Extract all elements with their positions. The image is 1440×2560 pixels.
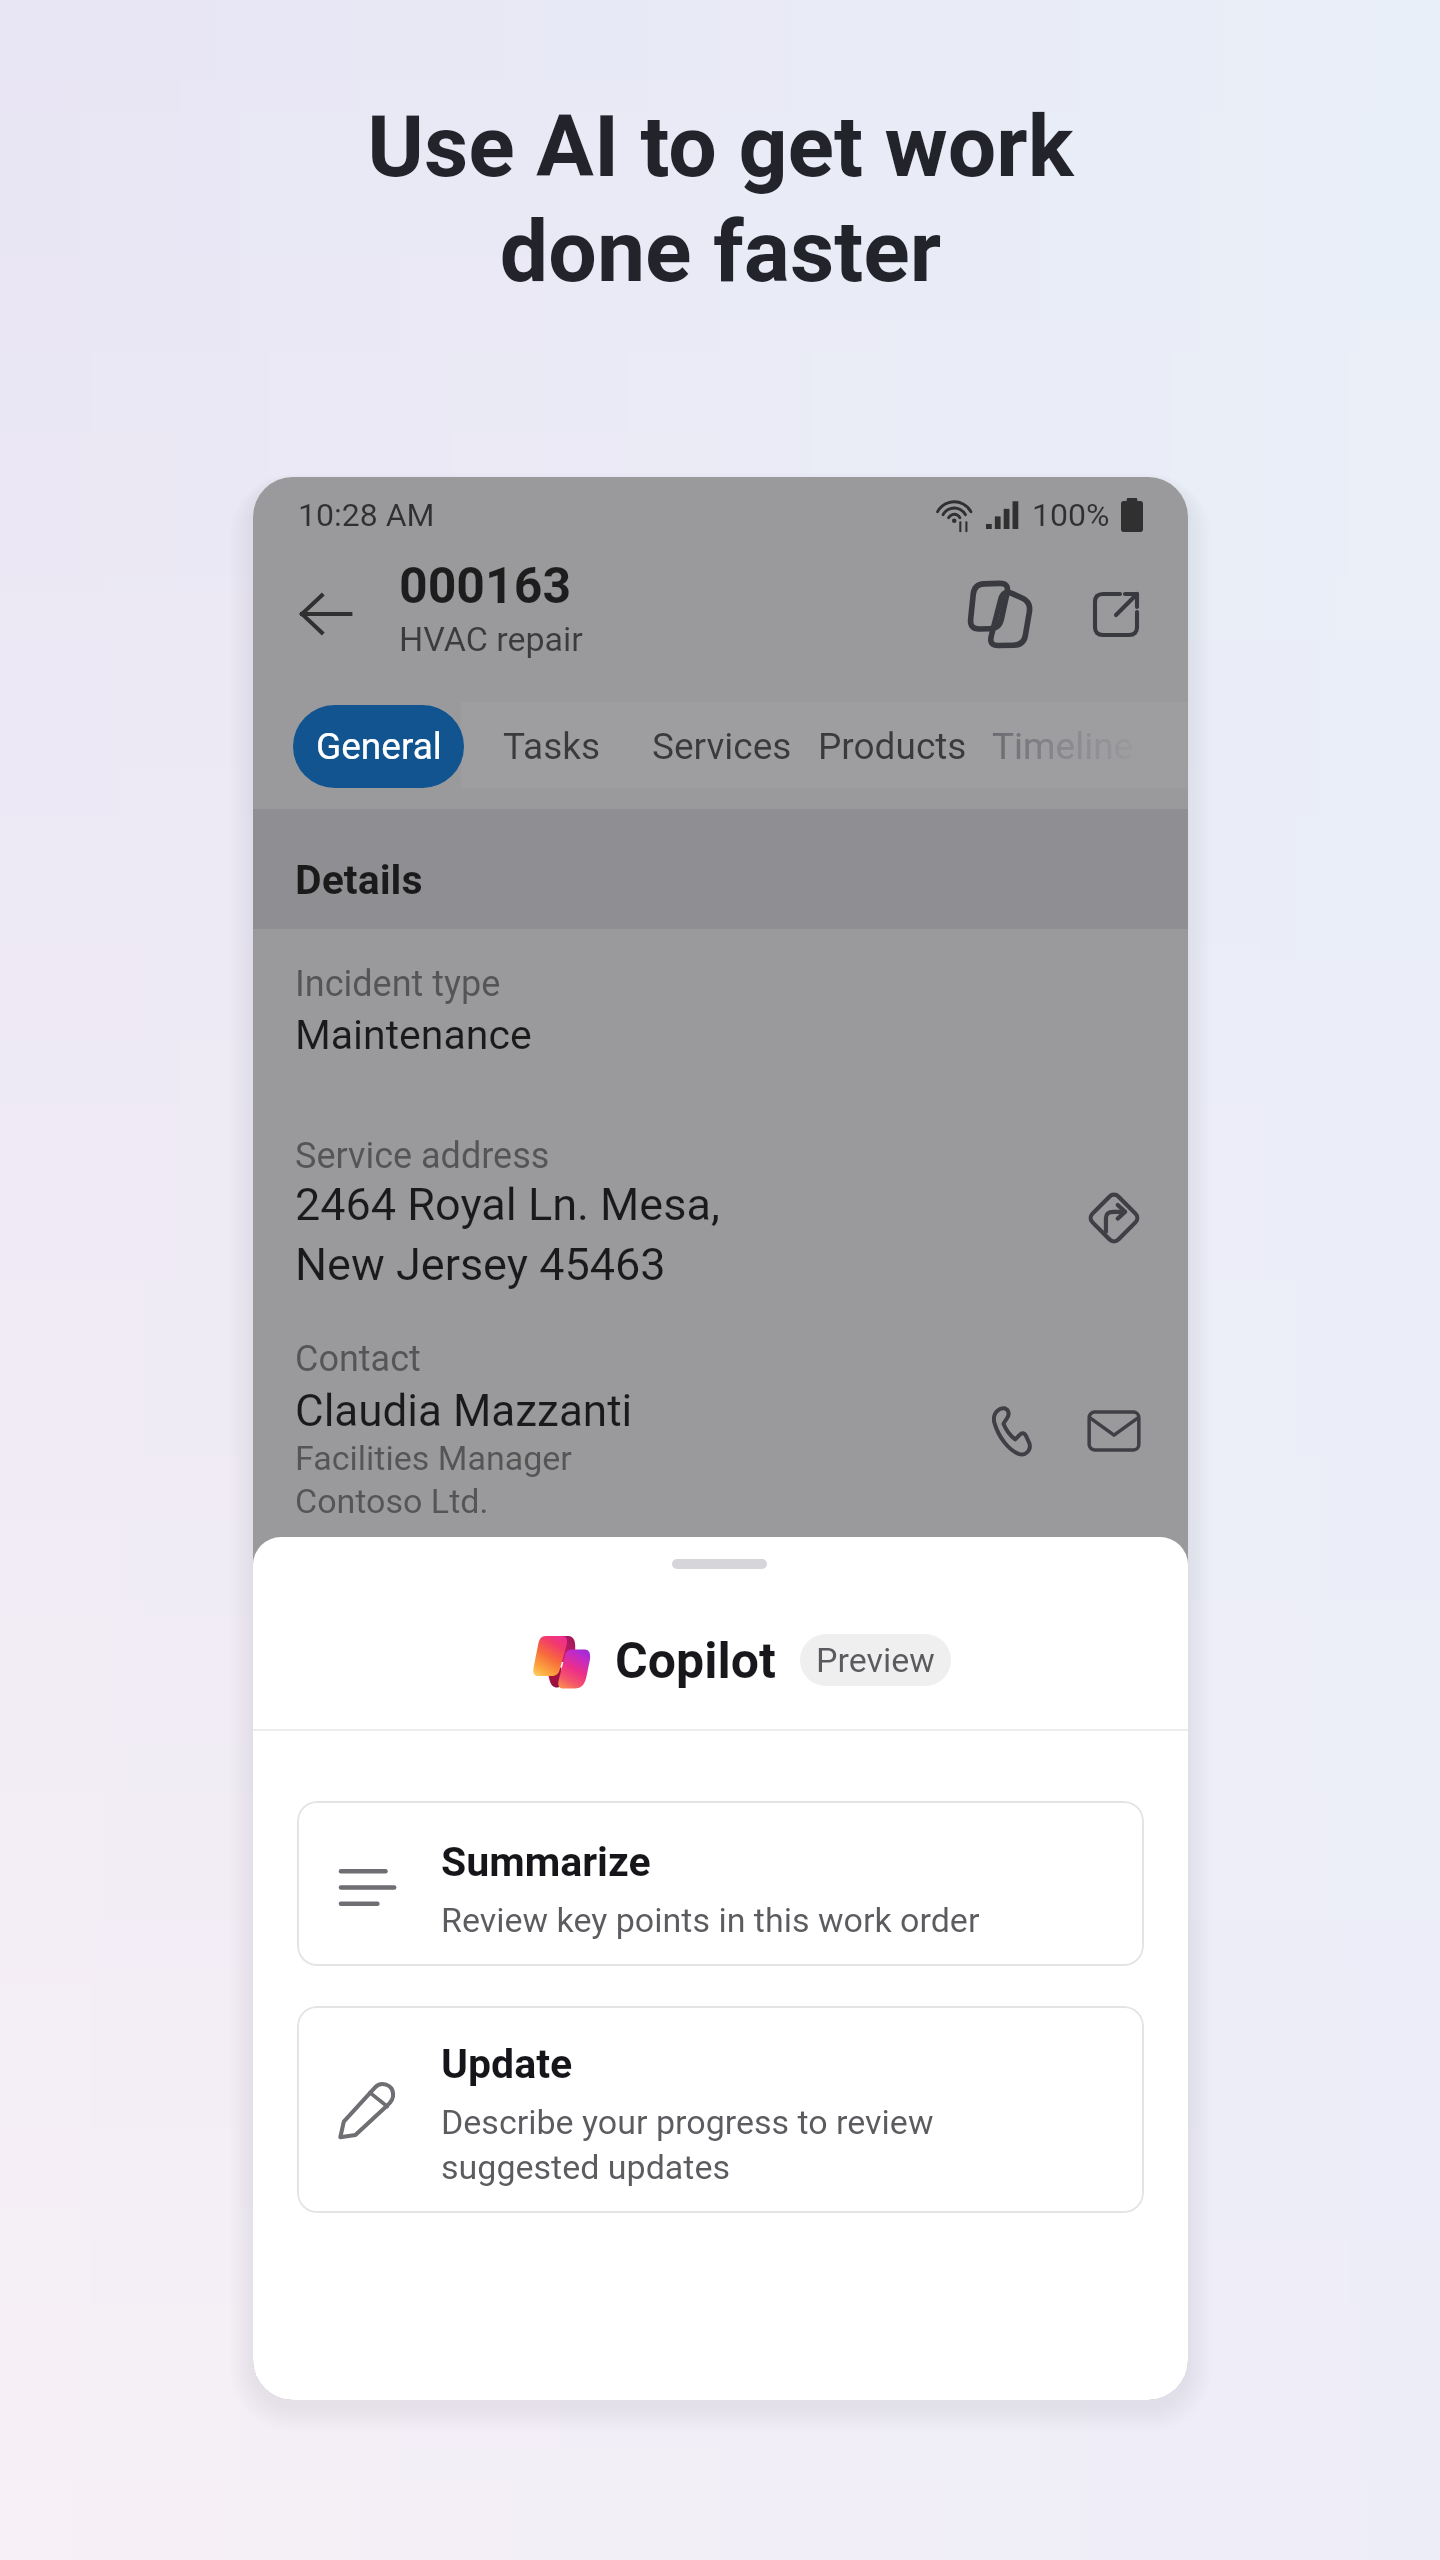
button[interactable]: Products: [798, 705, 987, 788]
button[interactable]: Call: [975, 1395, 1047, 1467]
staticText: Summarize: [441, 1838, 651, 1886]
staticText: General: [316, 725, 442, 768]
button[interactable]: Copilot: [964, 578, 1036, 650]
button[interactable]: Tasks: [483, 705, 621, 788]
staticText: Tasks: [503, 725, 601, 768]
staticText: 000163: [399, 557, 572, 616]
button[interactable]: Open in new: [1080, 578, 1152, 650]
button[interactable]: Timeline: [972, 705, 1154, 788]
staticText: Describe your progress to review suggest…: [441, 2102, 934, 2188]
staticText: 10:28 AM: [298, 496, 435, 534]
staticText: 2464 Royal Ln. Mesa, New Jersey 45463: [295, 1178, 720, 1290]
staticText: Service address: [295, 1135, 550, 1177]
button[interactable]: Preview: [800, 1634, 951, 1686]
staticText: Use AI to get work done faster: [367, 96, 1074, 302]
staticText: Details: [295, 856, 423, 904]
button[interactable]: Services: [632, 705, 812, 788]
staticText: HVAC repair: [399, 619, 583, 659]
staticText: Update: [441, 2040, 573, 2088]
button[interactable]: Back: [292, 580, 360, 648]
staticText: Contact: [295, 1338, 421, 1380]
staticText: Review key points in this work order: [441, 1900, 980, 1940]
staticText: Maintenance: [295, 1011, 532, 1059]
staticText: Timeline: [992, 725, 1134, 768]
staticText: Preview: [816, 1640, 935, 1680]
staticText: 100%: [1032, 496, 1110, 534]
button[interactable]: Summarize: [297, 1801, 1144, 1966]
staticText: Services: [652, 725, 792, 768]
button[interactable]: Email: [1078, 1395, 1150, 1467]
staticText: Facilities Manager Contoso Ltd.: [295, 1438, 572, 1521]
button[interactable]: Update: [297, 2006, 1144, 2213]
button[interactable]: Directions: [1078, 1182, 1150, 1254]
staticText: Copilot: [615, 1632, 776, 1691]
button[interactable]: General: [293, 705, 464, 788]
staticText: Incident type: [295, 963, 501, 1005]
staticText: Products: [818, 725, 967, 768]
staticText: Claudia Mazzanti: [295, 1385, 633, 1437]
